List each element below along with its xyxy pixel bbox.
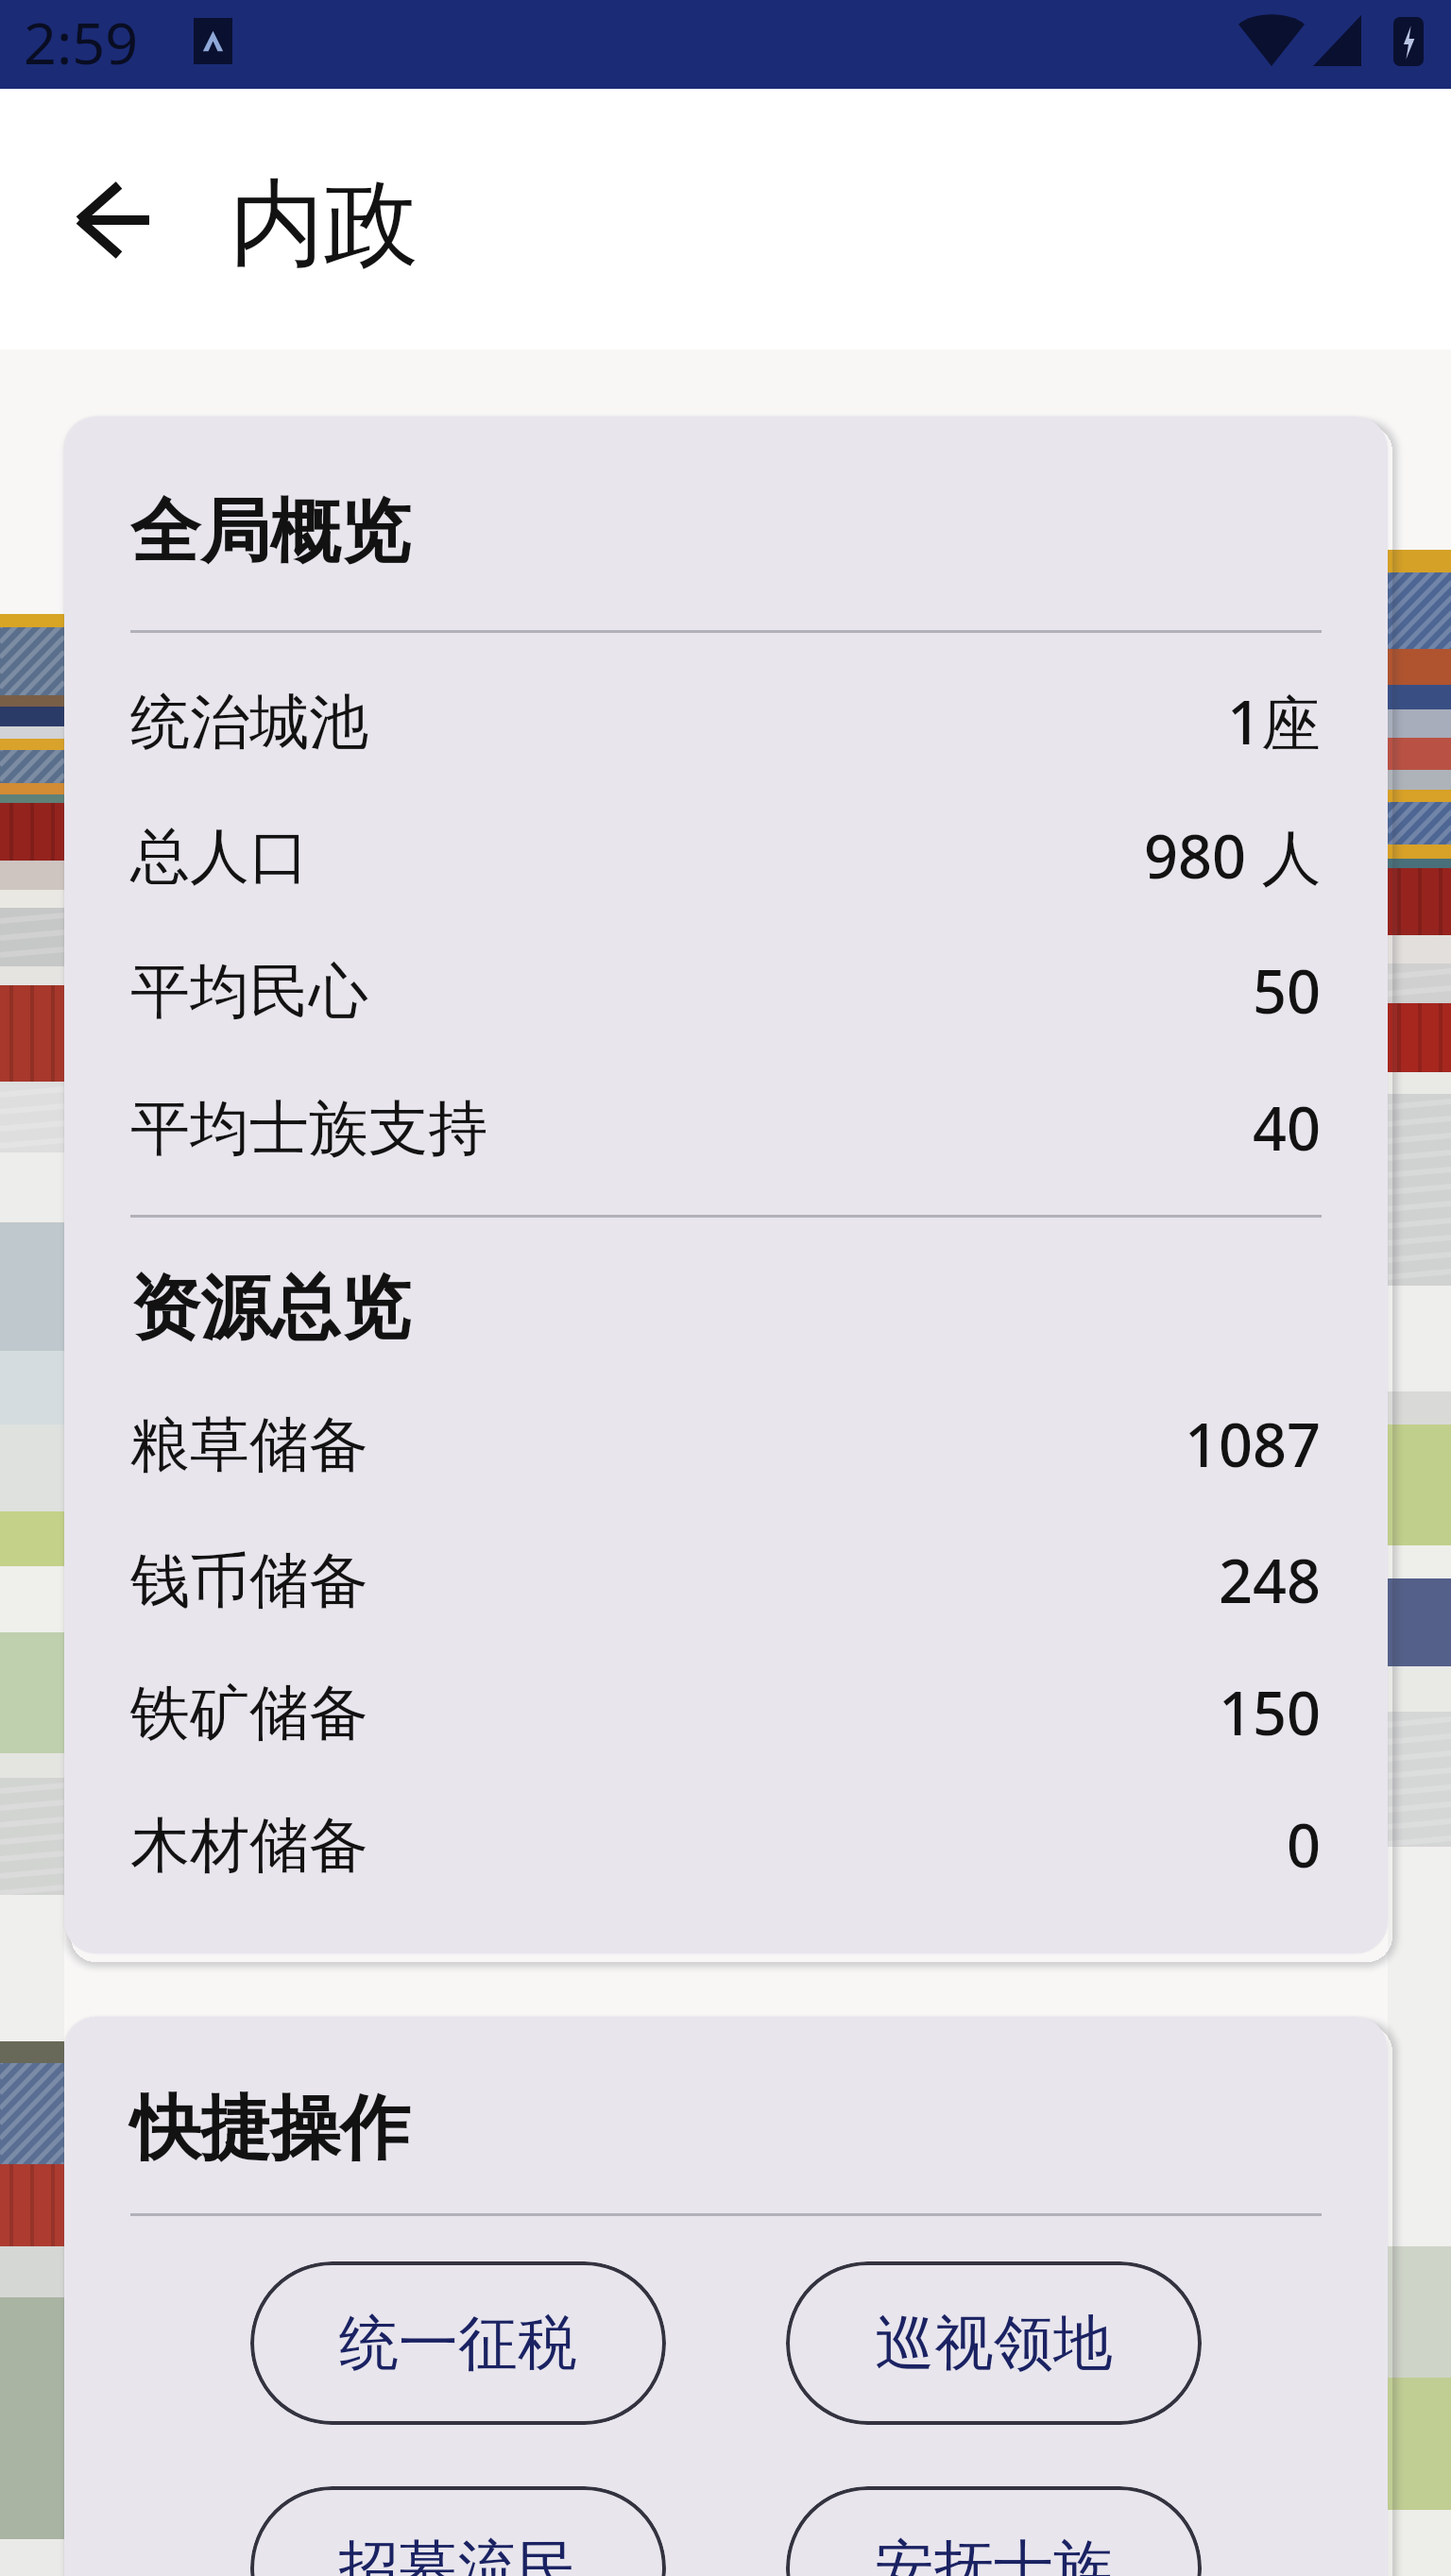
staticText: 钱币储备 xyxy=(130,1544,368,1618)
button[interactable]: 安抚士族 xyxy=(786,2486,1202,2576)
button[interactable]: 招募流民 xyxy=(250,2486,666,2576)
button[interactable]: 巡视领地 xyxy=(786,2261,1202,2425)
button[interactable]: Back xyxy=(47,152,183,288)
staticText: 50 xyxy=(1253,950,1322,1032)
staticText: 铁矿储备 xyxy=(130,1676,368,1750)
staticText: 平均民心 xyxy=(130,954,368,1029)
staticText: 2:59 xyxy=(24,3,139,81)
staticText: 木材储备 xyxy=(130,1808,368,1883)
staticText: 总人口 xyxy=(130,819,309,894)
staticText: 粮草储备 xyxy=(130,1407,368,1482)
staticText: 快捷操作 xyxy=(130,2085,410,2173)
staticText: 150 xyxy=(1219,1672,1322,1753)
staticText: 统一征税 xyxy=(339,2306,577,2380)
staticText: 统治城池 xyxy=(130,685,368,759)
staticText: 平均士族支持 xyxy=(130,1091,487,1166)
staticText: 招募流民 xyxy=(339,2531,577,2576)
staticText: 资源总览 xyxy=(130,1265,410,1353)
staticText: 0 xyxy=(1287,1804,1322,1885)
staticText: 1座 xyxy=(1227,681,1322,762)
staticText: 248 xyxy=(1219,1540,1322,1621)
staticText: 安抚士族 xyxy=(875,2531,1113,2576)
staticText: 1087 xyxy=(1185,1404,1322,1485)
staticText: 巡视领地 xyxy=(875,2306,1113,2380)
staticText: 全局概览 xyxy=(130,488,410,576)
button[interactable]: 统一征税 xyxy=(250,2261,666,2425)
staticText: 980 人 xyxy=(1144,815,1322,896)
staticText: 内政 xyxy=(230,165,418,284)
staticText: 40 xyxy=(1253,1087,1322,1169)
